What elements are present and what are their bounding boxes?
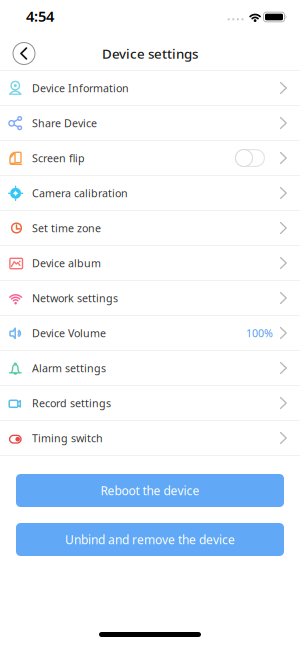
staticText: Reboot the device	[100, 482, 199, 498]
staticText: Network settings	[32, 291, 118, 305]
button[interactable]: Device Information	[0, 71, 300, 105]
button[interactable]: Set time zone	[0, 211, 300, 245]
staticText: 4:54	[26, 6, 54, 26]
staticText: Unbind and remove the device	[65, 531, 235, 547]
button[interactable]: Share Device	[0, 106, 300, 140]
staticText: Timing switch	[32, 431, 103, 445]
staticText: Share Device	[32, 116, 97, 130]
staticText: Device Information	[32, 81, 129, 95]
staticText: Camera calibration	[32, 186, 128, 200]
button[interactable]: Back	[12, 41, 36, 65]
button[interactable]: Device album	[0, 246, 300, 280]
button[interactable]: Alarm settings	[0, 351, 300, 385]
staticText: 100%	[246, 326, 273, 340]
button[interactable]: Camera calibration	[0, 176, 300, 210]
button[interactable]: Reboot the device	[16, 474, 284, 507]
staticText: Screen flip	[32, 151, 85, 165]
button[interactable]: Unbind and remove the device	[16, 523, 284, 556]
staticText: Record settings	[32, 396, 111, 410]
button[interactable]: Screen flip toggle	[235, 149, 265, 167]
button[interactable]: Timing switch	[0, 421, 300, 455]
staticText: Set time zone	[32, 221, 101, 235]
staticText: Device settings	[102, 45, 198, 62]
staticText: Device Volume	[32, 326, 106, 340]
button[interactable]: Screen flip	[0, 141, 300, 175]
button[interactable]: Record settings	[0, 386, 300, 420]
button[interactable]: Device Volume	[0, 316, 300, 350]
button[interactable]: Network settings	[0, 281, 300, 315]
staticText: Alarm settings	[32, 361, 106, 375]
staticText: Device album	[32, 256, 101, 270]
